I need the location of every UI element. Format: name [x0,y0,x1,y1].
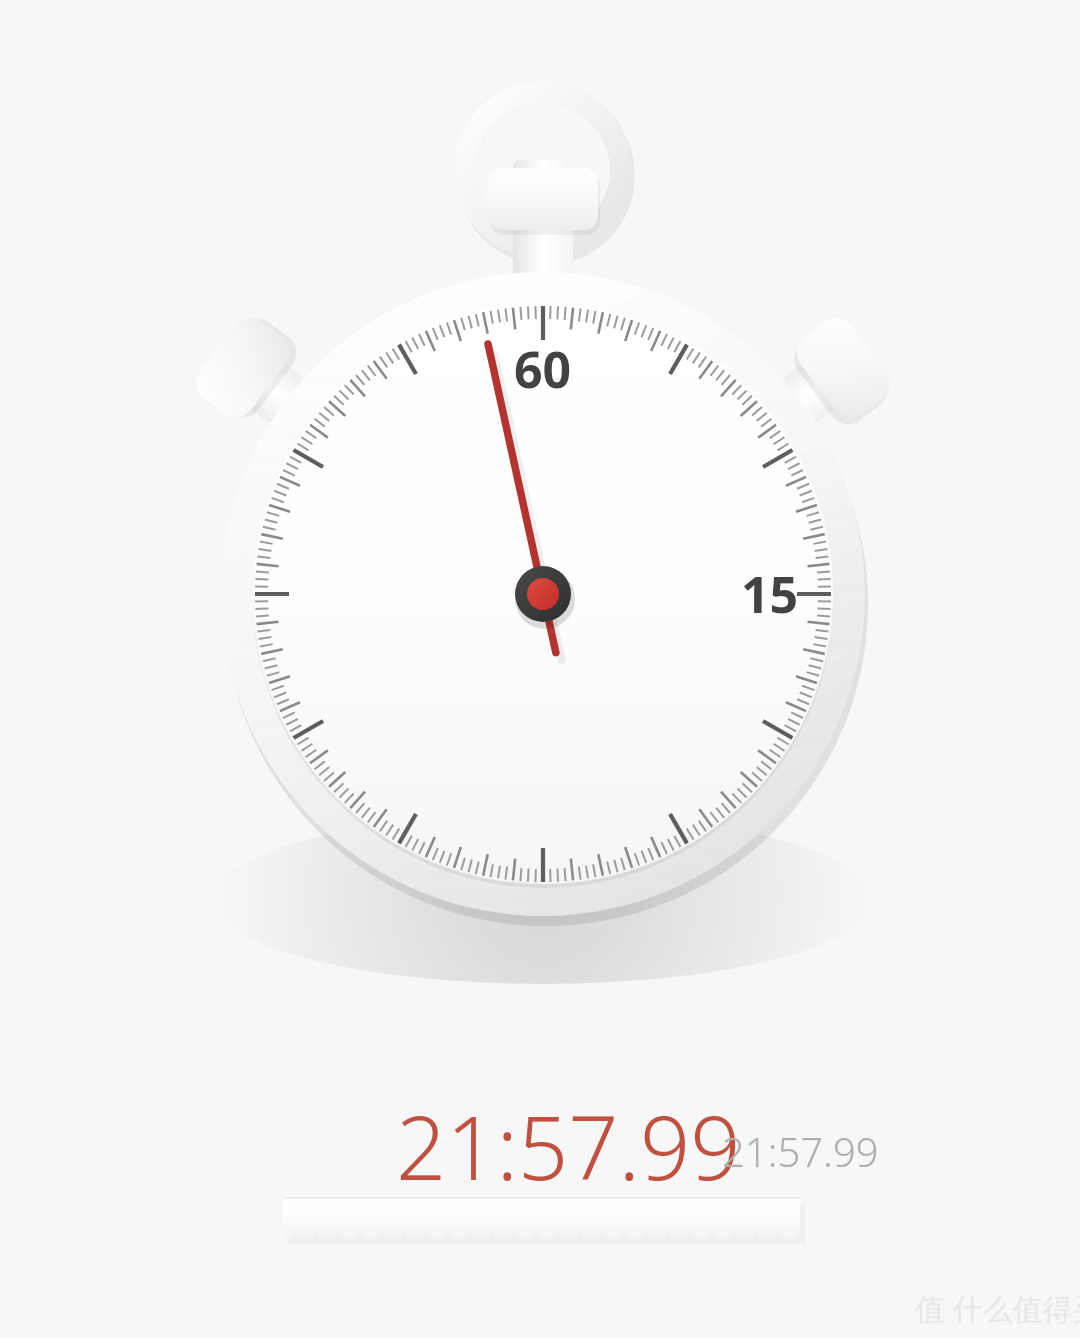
button[interactable]: Stopwatch [0,0,1080,1338]
